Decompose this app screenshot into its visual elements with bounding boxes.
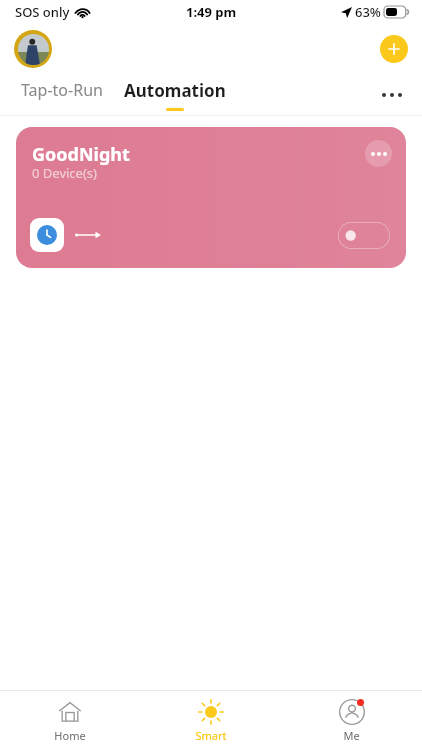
button[interactable]: Tap-to-Run	[17, 75, 107, 105]
staticText: Tap-to-Run	[21, 79, 103, 101]
button[interactable]: More options	[377, 80, 407, 110]
staticText: Automation	[124, 79, 226, 102]
staticText: Smart	[195, 728, 227, 743]
button[interactable]: Smart	[140, 691, 281, 750]
button[interactable]: Automation	[120, 75, 230, 115]
staticText: Me	[343, 728, 360, 743]
button[interactable]: Me	[281, 691, 422, 750]
button[interactable]: Enable automation	[338, 222, 390, 249]
staticText: SOS only	[15, 3, 70, 21]
staticText: 63%	[355, 3, 381, 21]
staticText: 1:49 pm	[186, 3, 237, 21]
button[interactable]: Profile	[14, 30, 52, 68]
button[interactable]: Home	[0, 691, 140, 750]
button[interactable]: Add	[380, 35, 408, 63]
staticText: 0 Device(s)	[32, 164, 97, 182]
button[interactable]: GoodNight	[16, 127, 406, 268]
staticText: Home	[54, 728, 86, 743]
button[interactable]: Automation options	[365, 140, 392, 167]
staticText: GoodNight	[32, 142, 130, 167]
